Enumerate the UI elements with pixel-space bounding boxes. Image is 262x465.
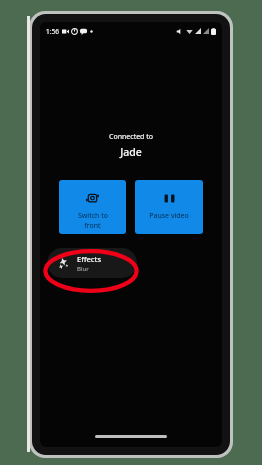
button[interactable]: Effects <box>47 248 137 278</box>
staticText: Switch to <box>78 211 108 221</box>
staticText: front <box>84 221 101 231</box>
staticText: Jade <box>120 145 142 159</box>
staticText: Connected to <box>109 132 153 142</box>
staticText: Pause video <box>149 211 189 221</box>
staticText: 1:56 <box>46 27 59 36</box>
other: Effects <box>57 258 68 269</box>
staticText: Effects <box>77 254 102 264</box>
staticText: Blur <box>77 265 89 273</box>
button[interactable]: Switch to <box>59 180 126 234</box>
button[interactable]: Pause video <box>135 180 203 234</box>
